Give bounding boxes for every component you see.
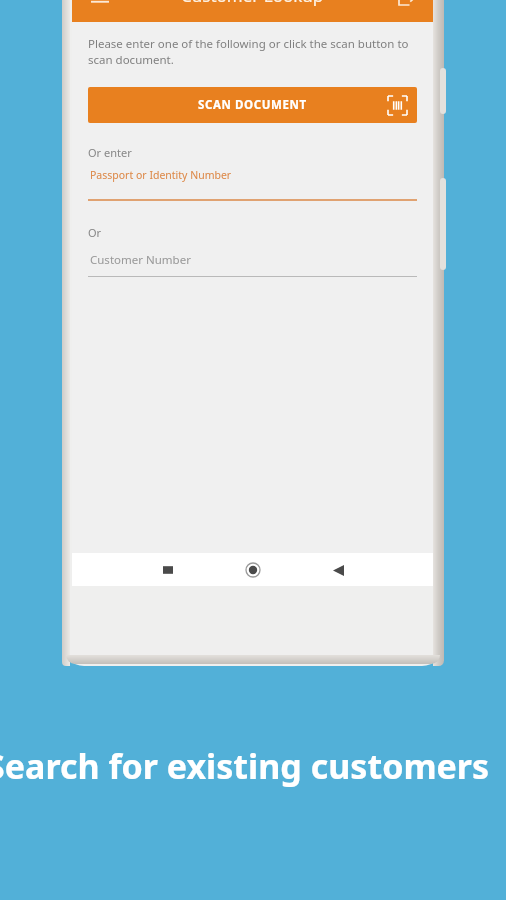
staticText: Or [88, 225, 102, 240]
button[interactable]: Open navigation menu [82, 0, 118, 14]
staticText: Customer Lookup [181, 0, 324, 7]
staticText: Please enter one of the following or cli… [88, 36, 417, 67]
staticText: SCAN DOCUMENT [198, 97, 307, 113]
staticText: Passport or Identity Number [90, 168, 232, 182]
button[interactable]: Back [323, 555, 353, 585]
staticText: Or enter [88, 145, 132, 160]
button[interactable]: Recent apps [153, 555, 183, 585]
staticText: Search for existing customers [0, 743, 492, 789]
staticText: Customer Number [90, 252, 191, 268]
button[interactable]: Passport or Identity Number [88, 168, 417, 201]
button[interactable]: Log out [390, 0, 424, 13]
button[interactable]: Customer Number [88, 252, 417, 277]
button[interactable]: SCAN DOCUMENT [88, 87, 417, 123]
button[interactable]: Home [238, 555, 268, 585]
